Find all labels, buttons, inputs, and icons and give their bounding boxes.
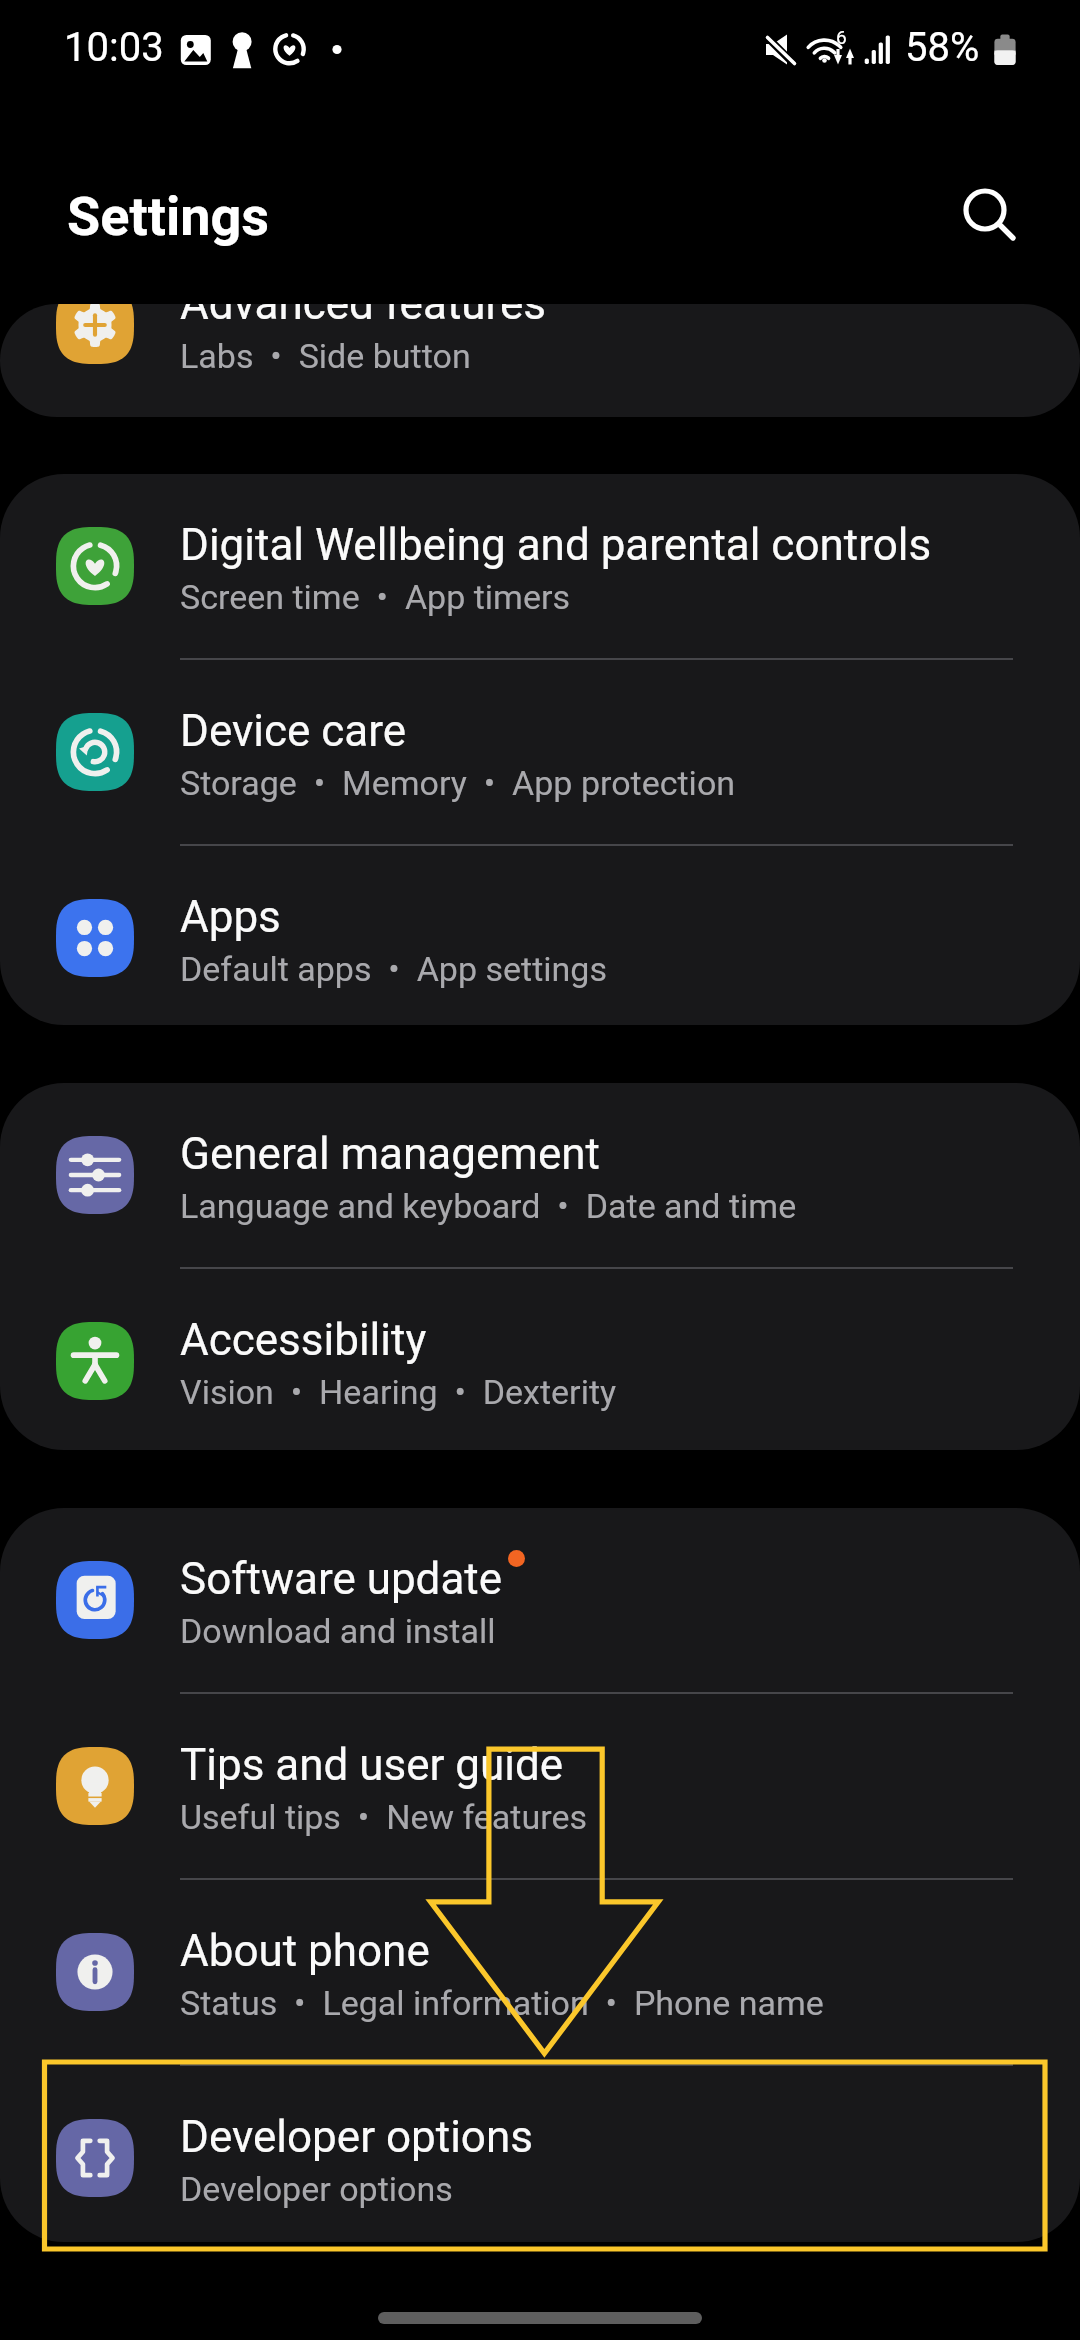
staticText: Developer options bbox=[180, 2111, 533, 2163]
button[interactable]: Developer options bbox=[0, 2066, 1080, 2242]
button[interactable]: Search bbox=[929, 158, 1041, 270]
button[interactable]: Device care bbox=[0, 660, 1080, 844]
staticText: Vision • Hearing • Dexterity bbox=[180, 1372, 617, 1412]
staticText: Settings bbox=[67, 185, 270, 248]
staticText: 10:03 bbox=[64, 24, 164, 71]
staticText: Screen time • App timers bbox=[180, 577, 571, 617]
staticText: Apps bbox=[180, 891, 281, 943]
staticText: Status • Legal information • Phone name bbox=[180, 1983, 824, 2023]
button[interactable]: Software update bbox=[0, 1508, 1080, 1692]
staticText: Software update bbox=[180, 1553, 503, 1605]
staticText: Advanced features bbox=[180, 304, 547, 330]
staticText: 6 bbox=[836, 26, 847, 48]
staticText: Developer options bbox=[180, 2169, 453, 2209]
button[interactable]: Tips and user guide bbox=[0, 1694, 1080, 1878]
button[interactable]: Apps bbox=[0, 846, 1080, 1025]
staticText: Labs • Side button bbox=[180, 336, 471, 376]
button[interactable]: Digital Wellbeing and parental controls bbox=[0, 474, 1080, 658]
staticText: 58% bbox=[905, 24, 980, 71]
staticText: Device care bbox=[180, 705, 407, 757]
button[interactable]: About phone bbox=[0, 1880, 1080, 2064]
button[interactable]: General management bbox=[0, 1083, 1080, 1267]
staticText: Download and install bbox=[180, 1611, 496, 1651]
staticText: Digital Wellbeing and parental controls bbox=[180, 519, 932, 571]
staticText: About phone bbox=[180, 1925, 430, 1977]
button[interactable]: Accessibility bbox=[0, 1269, 1080, 1450]
staticText: Language and keyboard • Date and time bbox=[180, 1186, 797, 1226]
button[interactable]: Advanced features bbox=[0, 304, 1080, 346]
staticText: Useful tips • New features bbox=[180, 1797, 587, 1837]
staticText: Accessibility bbox=[180, 1314, 427, 1366]
staticText: Tips and user guide bbox=[180, 1739, 564, 1791]
staticText: General management bbox=[180, 1128, 600, 1180]
staticText: Default apps • App settings bbox=[180, 949, 607, 989]
button[interactable]: Settings bbox=[40, 160, 360, 272]
staticText: Storage • Memory • App protection bbox=[180, 763, 736, 803]
